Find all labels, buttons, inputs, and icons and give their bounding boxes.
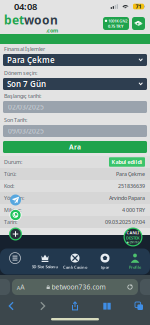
button[interactable]: Live support <box>123 227 143 247</box>
staticText: bet <box>4 12 24 28</box>
staticText: betwoon736.com <box>51 283 105 291</box>
staticText: Canlı Casino <box>63 265 87 270</box>
staticText: 71 <box>135 3 141 10</box>
staticText: Finansal İşlemler <box>4 45 45 53</box>
staticText: Türü: <box>4 170 16 178</box>
button[interactable]: WhatsApp <box>9 209 21 221</box>
button[interactable]: Telegram <box>9 194 21 206</box>
button[interactable]: Ara <box>0 141 150 153</box>
button[interactable]: Share <box>69 300 81 312</box>
staticText: 04:08 <box>14 0 37 13</box>
staticText: 02/03/2025 <box>8 103 44 111</box>
staticText: Dönem seçin: <box>4 69 37 77</box>
staticText: Kod: <box>4 182 14 190</box>
button[interactable]: Deposit <box>132 17 145 30</box>
staticText: Son Tarih: <box>4 116 27 124</box>
staticText: Profile <box>129 265 141 270</box>
button[interactable]: 3D Slot Salonu <box>30 248 60 274</box>
staticText: Para Çekme <box>7 55 55 65</box>
button[interactable]: Back <box>5 300 17 312</box>
button[interactable]: Canlı Casino <box>60 248 90 274</box>
staticText: 251836639 <box>118 182 145 190</box>
staticText: 0.75 TRY <box>108 23 124 29</box>
staticText: Durum: <box>4 158 22 166</box>
staticText: 1001KGN2 <box>108 18 127 23</box>
staticText: Para Çekme <box>116 170 145 178</box>
staticText: 4 000 TRY <box>122 206 145 214</box>
button[interactable]: Tabs <box>133 300 145 312</box>
staticText: 09.03.2025 07:04 <box>105 218 145 226</box>
button[interactable]: 02/03/2025 <box>0 101 150 113</box>
button[interactable]: Para Çekme <box>0 54 150 66</box>
staticText: CANLI <box>126 230 139 235</box>
staticText: Kabul edildi <box>111 158 142 166</box>
button[interactable]: 09/03/2025 <box>0 125 150 137</box>
staticText: 3D Slot Salonu <box>31 264 58 269</box>
staticText: Son 7 Gün <box>7 79 46 89</box>
button[interactable] <box>0 248 30 274</box>
staticText: Arvindo Papara <box>109 194 145 202</box>
staticText: Miktar: <box>4 206 21 214</box>
button[interactable]: Son 7 Gün <box>0 78 150 90</box>
staticText: ● çevrimiçi <box>126 240 139 244</box>
staticText: Başlangıç tarihi: <box>4 92 41 100</box>
staticText: Ara <box>69 143 81 151</box>
staticText: A <box>17 284 20 291</box>
staticText: woon <box>24 12 58 28</box>
staticText: A <box>20 283 24 291</box>
staticText: Tarih: <box>4 218 17 226</box>
button[interactable]: A <box>12 279 138 295</box>
button[interactable]: Bookmarks <box>101 300 113 312</box>
staticText: DESTEK <box>126 235 140 240</box>
staticText: Yöntem: <box>4 194 24 202</box>
staticText: 09/03/2025 <box>8 127 44 135</box>
button[interactable]: Spor <box>90 248 120 274</box>
button[interactable]: Add <box>8 227 22 241</box>
staticText: Spor <box>100 265 109 270</box>
staticText: .com <box>46 27 58 34</box>
button[interactable]: Forward <box>37 300 49 312</box>
button[interactable]: Profile <box>120 248 150 274</box>
button[interactable]: 1001KGN2 <box>103 17 129 30</box>
